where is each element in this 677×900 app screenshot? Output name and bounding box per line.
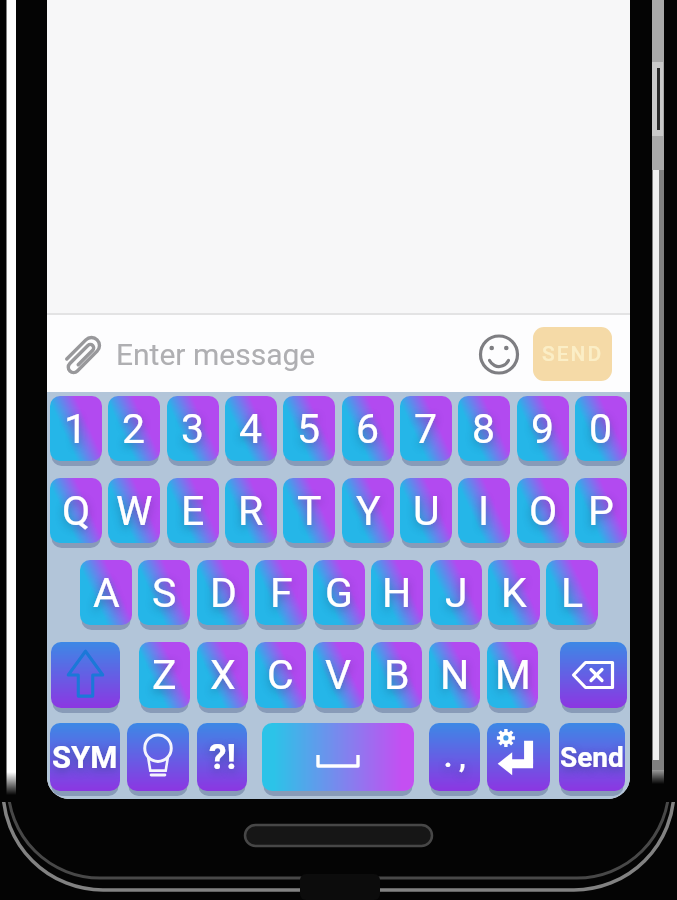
button[interactable] bbox=[47, 315, 630, 392]
staticText: G bbox=[325, 569, 353, 617]
button[interactable]: F bbox=[255, 560, 307, 625]
staticText: 8 bbox=[472, 405, 496, 453]
staticText: 6 bbox=[356, 405, 380, 453]
staticText: J bbox=[445, 569, 468, 617]
button[interactable] bbox=[51, 642, 120, 708]
button[interactable]: 6 bbox=[342, 396, 394, 461]
button[interactable]: B bbox=[371, 642, 422, 708]
staticText: 9 bbox=[531, 405, 555, 453]
button[interactable]: . , bbox=[429, 723, 480, 791]
button[interactable]: T bbox=[283, 478, 335, 543]
button[interactable]: Q bbox=[50, 478, 102, 543]
staticText: N bbox=[440, 651, 470, 699]
staticText: 5 bbox=[297, 405, 321, 453]
staticText: 3 bbox=[181, 405, 205, 453]
button[interactable]: X bbox=[197, 642, 248, 708]
button[interactable] bbox=[127, 723, 189, 791]
staticText: 2 bbox=[122, 405, 146, 453]
button[interactable]: O bbox=[517, 478, 569, 543]
staticText: 0 bbox=[589, 405, 613, 453]
button[interactable]: 9 bbox=[517, 396, 569, 461]
staticText: ?! bbox=[209, 737, 236, 778]
staticText: L bbox=[561, 569, 584, 617]
button[interactable]: 4 bbox=[225, 396, 277, 461]
button[interactable]: K bbox=[488, 560, 540, 625]
staticText: 7 bbox=[414, 405, 438, 453]
staticText: 4 bbox=[239, 405, 263, 453]
staticText: M bbox=[495, 651, 531, 699]
button[interactable] bbox=[487, 723, 550, 791]
button[interactable]: V bbox=[313, 642, 364, 708]
button[interactable]: SEND bbox=[533, 327, 612, 381]
staticText: 1 bbox=[64, 405, 88, 453]
button[interactable]: P bbox=[575, 478, 627, 543]
staticText: . , bbox=[444, 741, 466, 774]
button[interactable]: R bbox=[225, 478, 277, 543]
button[interactable]: 8 bbox=[458, 396, 510, 461]
button[interactable]: H bbox=[371, 560, 423, 625]
button[interactable] bbox=[262, 723, 414, 791]
button[interactable]: A bbox=[80, 560, 132, 625]
button[interactable]: 0 bbox=[575, 396, 627, 461]
staticText: F bbox=[270, 569, 293, 617]
button[interactable]: G bbox=[313, 560, 365, 625]
button[interactable]: D bbox=[197, 560, 249, 625]
button[interactable]: Y bbox=[342, 478, 394, 543]
staticText: D bbox=[210, 569, 237, 617]
button[interactable]: N bbox=[429, 642, 480, 708]
button[interactable]: Z bbox=[139, 642, 190, 708]
staticText: R bbox=[238, 487, 264, 535]
button[interactable]: E bbox=[167, 478, 219, 543]
staticText: X bbox=[210, 651, 236, 699]
button[interactable]: 5 bbox=[283, 396, 335, 461]
staticText: SYM bbox=[52, 739, 118, 775]
button[interactable] bbox=[560, 642, 627, 708]
staticText: Q bbox=[62, 487, 91, 535]
button[interactable]: J bbox=[430, 560, 482, 625]
staticText: K bbox=[501, 569, 527, 617]
button[interactable]: 3 bbox=[167, 396, 219, 461]
button[interactable]: 7 bbox=[400, 396, 452, 461]
button[interactable]: I bbox=[458, 478, 510, 543]
button[interactable]: ?! bbox=[197, 723, 247, 791]
staticText: Enter message bbox=[116, 337, 316, 372]
staticText: Y bbox=[356, 487, 381, 535]
button[interactable]: C bbox=[255, 642, 306, 708]
button[interactable]: W bbox=[108, 478, 160, 543]
staticText: W bbox=[116, 487, 153, 535]
button[interactable]: L bbox=[546, 560, 598, 625]
staticText: T bbox=[297, 487, 322, 535]
staticText: Z bbox=[152, 651, 177, 699]
staticText: V bbox=[325, 651, 352, 699]
staticText: I bbox=[478, 487, 490, 535]
staticText: B bbox=[384, 651, 410, 699]
button[interactable]: 2 bbox=[108, 396, 160, 461]
staticText: P bbox=[588, 487, 614, 535]
button[interactable]: SYM bbox=[50, 723, 120, 791]
staticText: O bbox=[529, 487, 558, 535]
staticText: A bbox=[93, 569, 120, 617]
button[interactable]: S bbox=[138, 560, 190, 625]
staticText: Send bbox=[560, 741, 624, 774]
staticText: SEND bbox=[542, 342, 604, 367]
button[interactable]: Send bbox=[559, 723, 625, 791]
button[interactable]: 1 bbox=[50, 396, 102, 461]
staticText: S bbox=[152, 569, 177, 617]
staticText: H bbox=[382, 569, 412, 617]
button[interactable]: U bbox=[400, 478, 452, 543]
button[interactable]: M bbox=[487, 642, 538, 708]
staticText: U bbox=[413, 487, 440, 535]
staticText: E bbox=[181, 487, 205, 535]
staticText: C bbox=[267, 651, 294, 699]
